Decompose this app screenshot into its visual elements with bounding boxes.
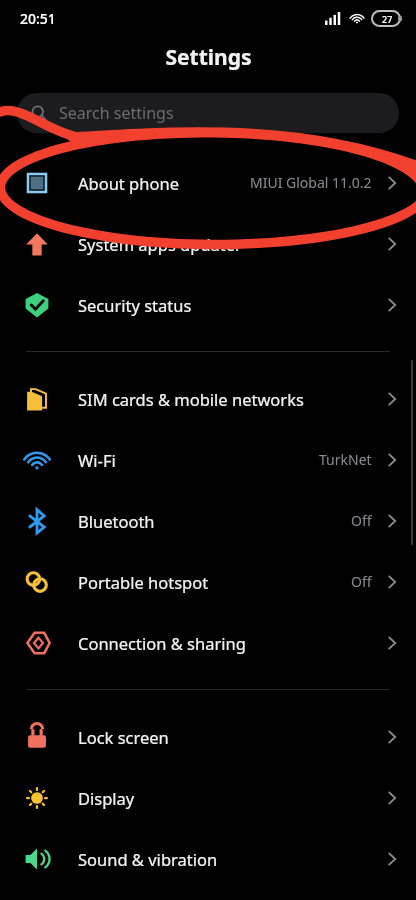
button[interactable]: Search settings [17,93,399,133]
staticText: Search settings [59,102,174,124]
staticText: Off [351,572,372,591]
staticText: Off [351,511,372,530]
staticText: Wi-Fi [78,449,116,471]
button[interactable]: System apps updater [0,213,416,274]
staticText: SIM cards & mobile networks [78,388,304,410]
staticText: Security status [78,294,192,316]
button[interactable]: Connection & sharing [0,612,416,673]
staticText: About phone [78,172,179,194]
button[interactable]: Sound & vibration [0,828,416,889]
button[interactable]: Wi-Fi [0,429,416,490]
staticText: Bluetooth [78,510,155,532]
staticText: Lock screen [78,726,169,748]
button[interactable]: Display [0,767,416,828]
staticText: 27 [382,13,393,25]
staticText: System apps updater [78,233,242,255]
button[interactable]: Lock screen [0,706,416,767]
staticText: Connection & sharing [78,632,246,654]
staticText: 20:51 [20,9,56,28]
staticText: TurkNet [319,450,372,469]
staticText: MIUI Global 11.0.2 [250,173,372,192]
button[interactable]: Bluetooth [0,490,416,551]
staticText: Portable hotspot [78,571,209,593]
button[interactable]: About phone [0,152,416,213]
button[interactable]: Security status [0,274,416,335]
button[interactable]: SIM cards & mobile networks [0,368,416,429]
staticText: Settings [165,43,252,72]
staticText: Sound & vibration [78,848,218,870]
button[interactable]: Portable hotspot [0,551,416,612]
staticText: Display [78,787,135,809]
